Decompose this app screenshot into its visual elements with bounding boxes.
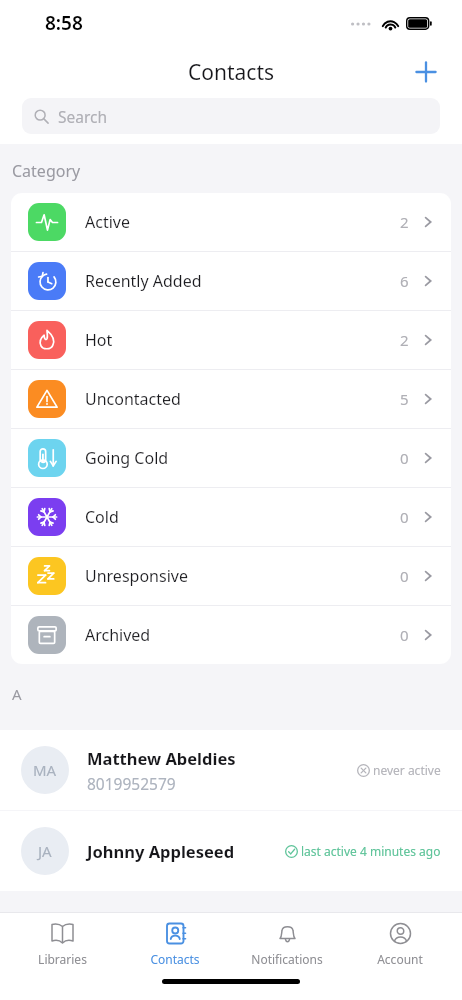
staticText: Matthew Abeldies	[87, 747, 236, 769]
button[interactable]: Unresponsive	[11, 547, 451, 605]
staticText: A	[12, 684, 22, 704]
staticText: Notifications	[251, 951, 323, 967]
button[interactable]: Recently Added	[11, 252, 451, 310]
staticText: 0	[400, 625, 409, 645]
button[interactable]: Active	[11, 193, 451, 251]
button[interactable]: Uncontacted	[11, 370, 451, 428]
staticText: Johnny Appleseed	[87, 840, 235, 862]
staticText: 0	[400, 507, 409, 527]
button[interactable]: JA	[0, 811, 462, 891]
button[interactable]: Going Cold	[11, 429, 451, 487]
staticText: Contacts	[150, 951, 200, 967]
button[interactable]: Add contact	[404, 50, 448, 94]
button[interactable]: MA	[0, 730, 462, 810]
staticText: MA	[33, 760, 57, 780]
staticText: 2	[400, 330, 409, 350]
staticText: Contacts	[188, 58, 275, 87]
button[interactable]: Hot	[11, 311, 451, 369]
staticText: Cold	[85, 506, 400, 528]
button[interactable]: Contacts	[125, 919, 225, 969]
staticText: Active	[85, 211, 400, 233]
staticText: Libraries	[38, 951, 87, 967]
staticText: 8019952579	[87, 773, 176, 794]
staticText: Hot	[85, 329, 400, 351]
staticText: 6	[400, 271, 409, 291]
staticText: never active	[373, 762, 441, 778]
button[interactable]: Libraries	[12, 919, 112, 969]
staticText: Recently Added	[85, 270, 400, 292]
staticText: JA	[38, 841, 52, 861]
staticText: Archived	[85, 624, 400, 646]
staticText: Uncontacted	[85, 388, 400, 410]
button[interactable]: Search	[22, 98, 440, 134]
staticText: 2	[400, 212, 409, 232]
staticText: last active 4 minutes ago	[301, 843, 441, 859]
staticText: 0	[400, 566, 409, 586]
button[interactable]: Account	[350, 919, 450, 969]
button[interactable]: Cold	[11, 488, 451, 546]
button[interactable]: Notifications	[237, 919, 337, 969]
staticText: Category	[12, 160, 81, 182]
staticText: Going Cold	[85, 447, 400, 469]
staticText: 5	[400, 389, 409, 409]
staticText: 8:58	[45, 10, 83, 36]
staticText: Account	[377, 951, 423, 967]
button[interactable]: Archived	[11, 606, 451, 664]
staticText: Unresponsive	[85, 565, 400, 587]
staticText: Search	[58, 106, 108, 127]
staticText: 0	[400, 448, 409, 468]
